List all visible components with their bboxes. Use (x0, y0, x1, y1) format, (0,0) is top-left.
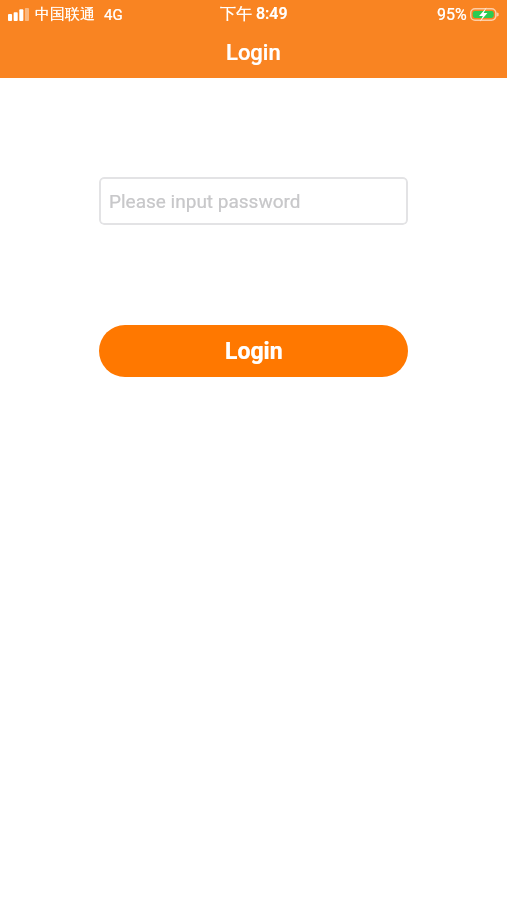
other: Cellular signal strength (8, 8, 29, 21)
staticText: Please input password (109, 190, 301, 212)
staticText: 下午 8:49 (220, 4, 288, 24)
staticText: 中国联通 (35, 5, 95, 24)
staticText: Login (225, 338, 283, 365)
button[interactable]: Login (99, 325, 408, 377)
staticText: 95% (437, 5, 467, 24)
staticText: Login (226, 40, 281, 66)
staticText: 4G (104, 6, 123, 24)
button[interactable]: Please input password (99, 177, 408, 225)
other: Battery 95 percent, charging (470, 8, 499, 21)
